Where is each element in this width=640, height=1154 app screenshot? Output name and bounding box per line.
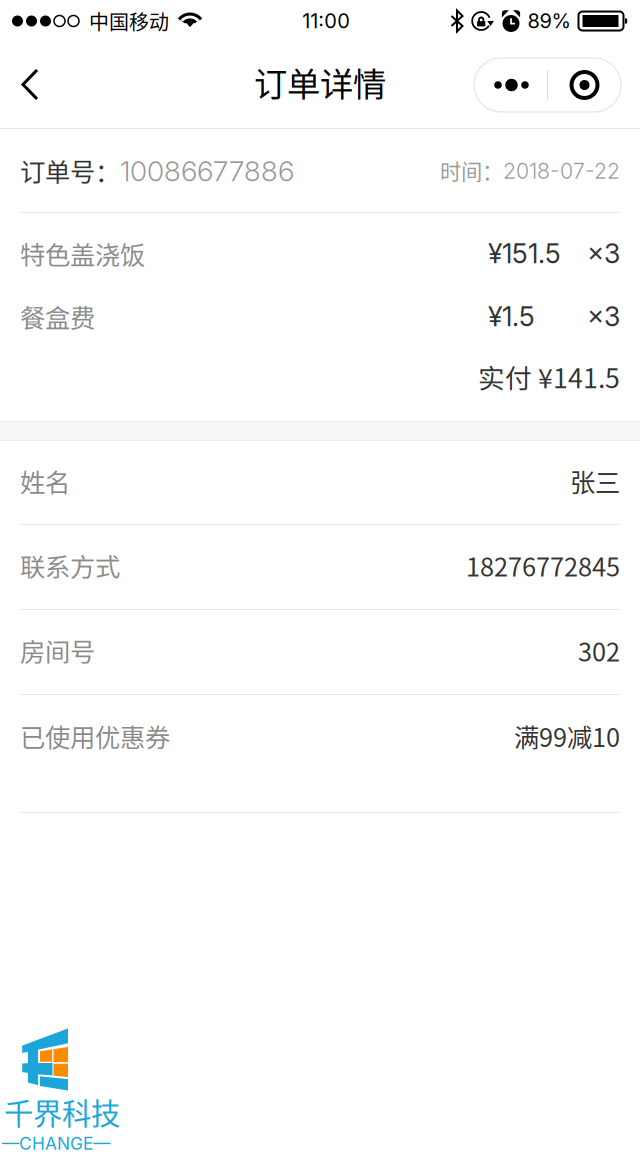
staticText: 特色盖浇饭: [20, 235, 145, 272]
button[interactable]: Back: [0, 48, 62, 122]
button[interactable]: 姓名: [0, 441, 640, 525]
staticText: 时间：: [440, 155, 503, 186]
staticText: 10086677886: [120, 154, 294, 188]
staticText: 联系方式: [20, 547, 120, 584]
staticText: 千界科技: [4, 1091, 120, 1133]
staticText: ×3: [587, 300, 620, 333]
staticText: ×3: [587, 237, 620, 270]
staticText: 18276772845: [466, 547, 620, 584]
staticText: 订单号：: [20, 152, 120, 189]
staticText: 张三: [570, 463, 620, 499]
button[interactable]: 房间号: [0, 610, 640, 695]
staticText: 订单详情: [254, 58, 386, 106]
staticText: 已使用优惠券: [20, 718, 170, 754]
staticText: 89%: [527, 9, 570, 33]
staticText: 满99减10: [514, 718, 620, 754]
staticText: 302: [578, 632, 620, 669]
button[interactable]: More: [474, 58, 547, 112]
staticText: ¥1.5: [488, 300, 535, 333]
staticText: 餐盒费: [20, 298, 95, 335]
staticText: 中国移动: [89, 6, 169, 35]
staticText: 实付 ¥141.5: [478, 357, 620, 396]
staticText: 2018-07-22: [503, 158, 620, 184]
staticText: 11:00: [302, 9, 350, 33]
button[interactable]: Close: [548, 58, 621, 112]
staticText: ¥151.5: [488, 237, 561, 270]
staticText: —CHANGE—: [2, 1133, 110, 1154]
button[interactable]: 联系方式: [0, 525, 640, 610]
staticText: 姓名: [20, 463, 70, 499]
staticText: 房间号: [20, 632, 95, 669]
button[interactable]: 已使用优惠券: [0, 695, 640, 780]
